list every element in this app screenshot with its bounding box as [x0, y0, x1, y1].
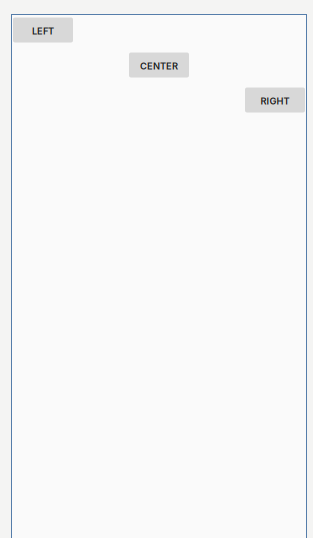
staticText: RIGHT [260, 95, 289, 107]
button[interactable]: LEFT [13, 17, 73, 42]
button[interactable]: CENTER [129, 52, 189, 77]
staticText: LEFT [32, 25, 54, 37]
staticText: CENTER [140, 60, 178, 72]
button[interactable]: RIGHT [245, 87, 305, 112]
